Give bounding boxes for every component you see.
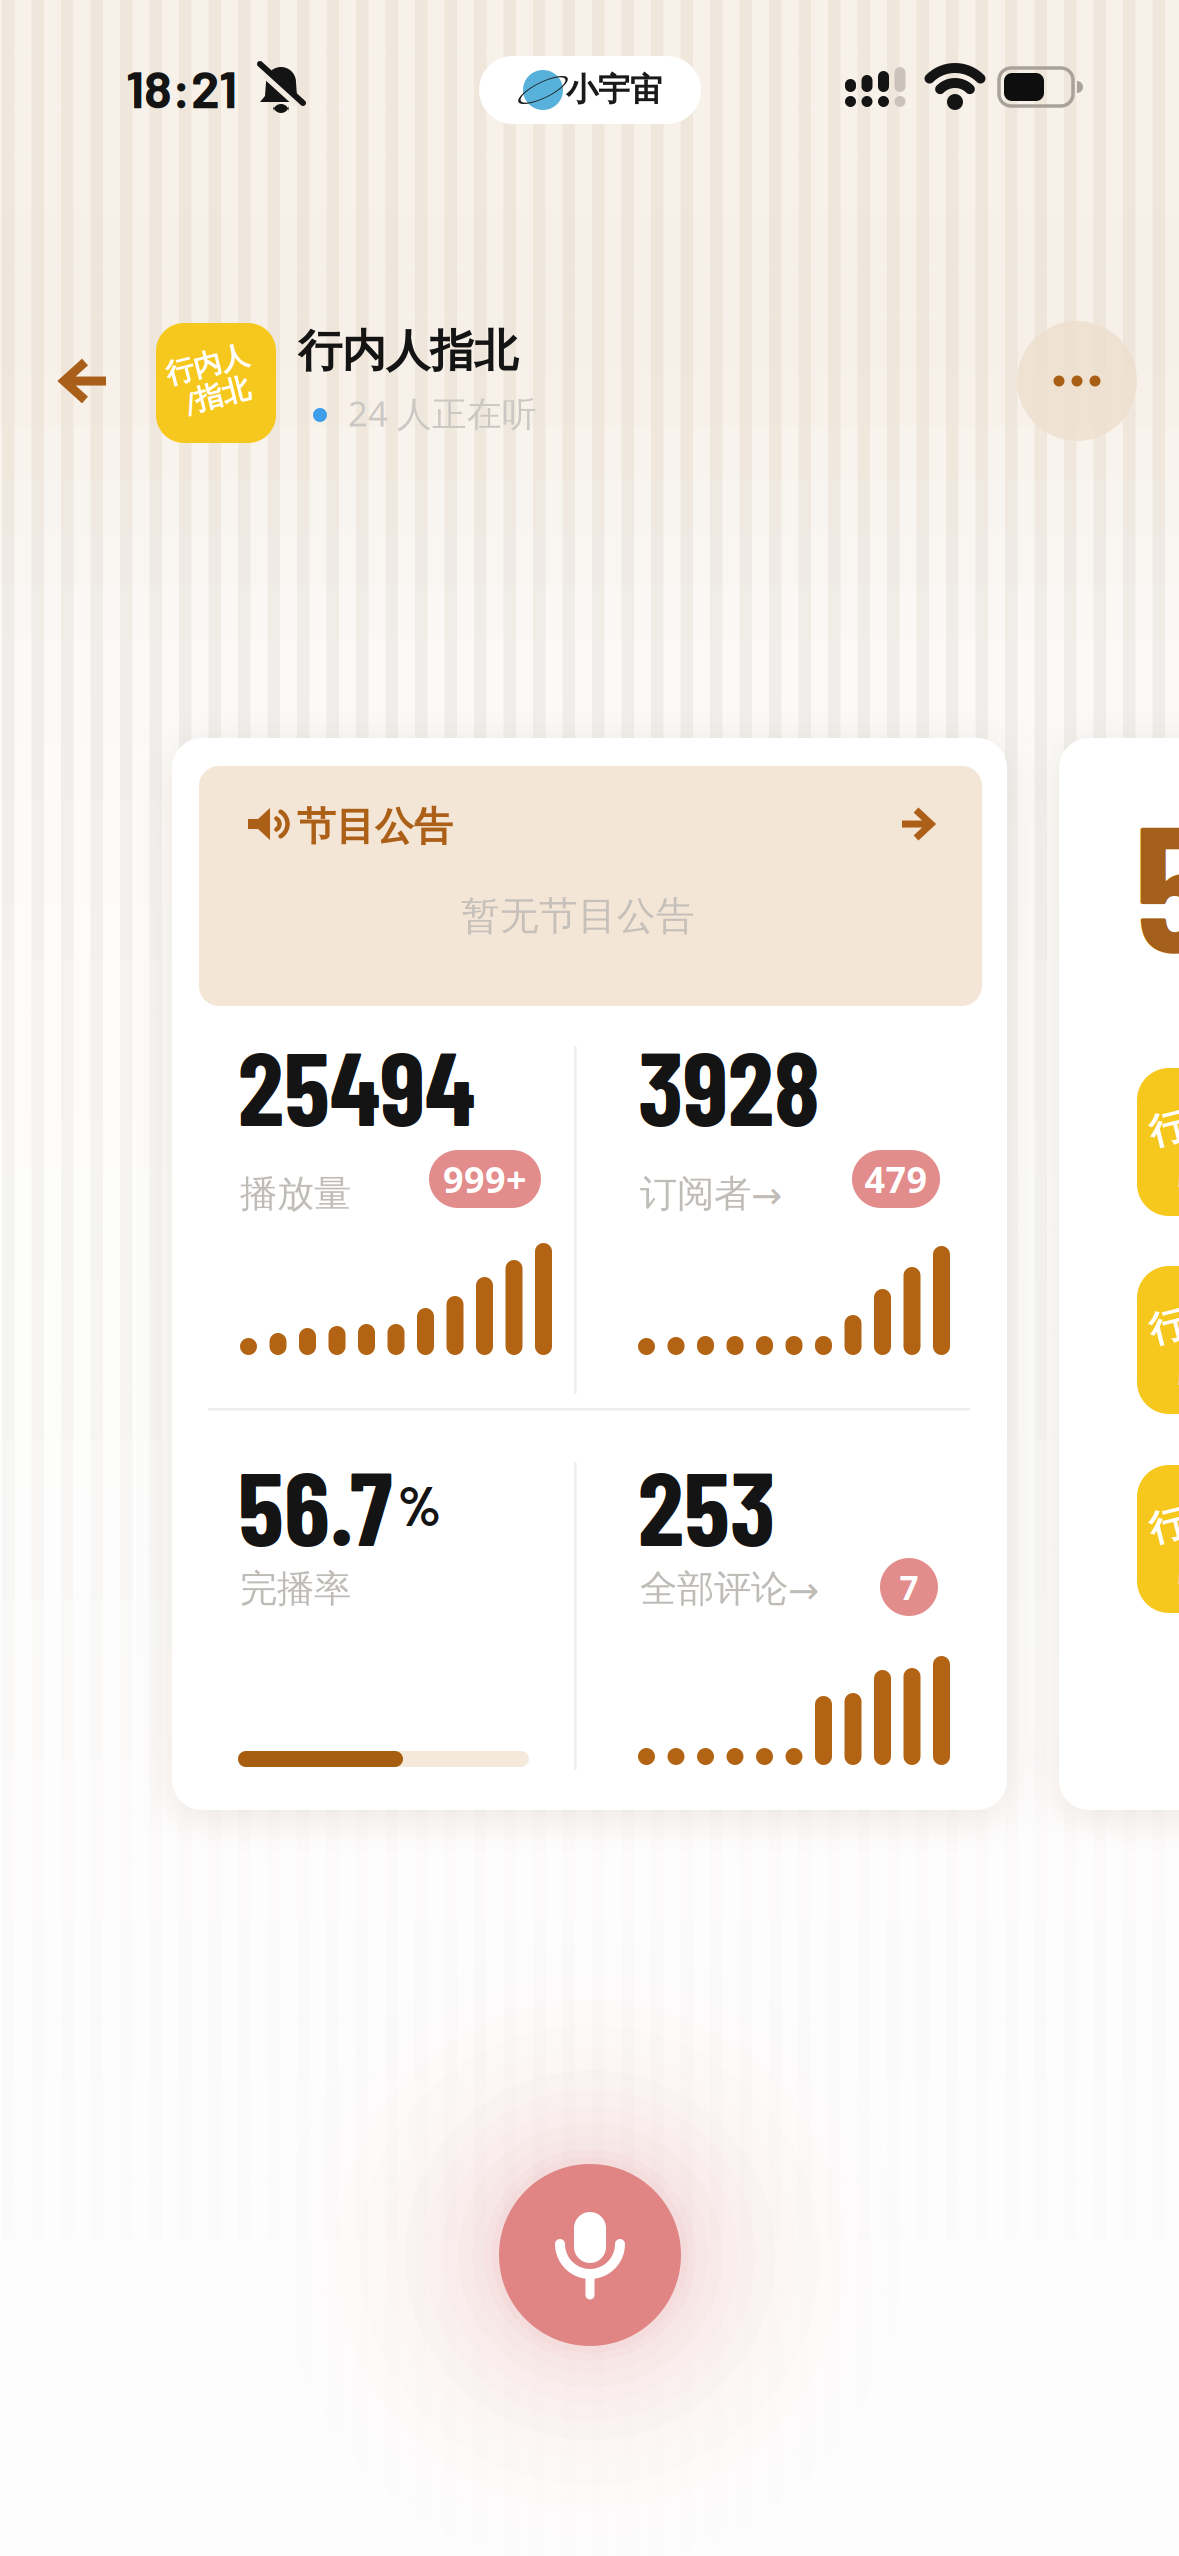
staticText: 7 (899, 1565, 918, 1609)
staticText: ∕指北 (1168, 1536, 1179, 1580)
staticText: 999+ (443, 1155, 527, 1203)
staticText: 订阅者→ (640, 1171, 782, 1217)
staticText: 播放量 (240, 1171, 351, 1217)
button[interactable]: More (1017, 321, 1137, 441)
button[interactable]: 全部评论→ (640, 1566, 819, 1612)
staticText: 行内人 (169, 347, 253, 381)
staticText: 25494 (238, 1022, 475, 1147)
staticText: 行内人 (1153, 1098, 1179, 1142)
staticText: ∕指北 (1168, 1337, 1179, 1381)
staticText: 3928 (638, 1022, 820, 1147)
button[interactable]: Record (499, 2164, 681, 2346)
staticText: 节目公告 (297, 803, 453, 850)
staticText: 完播率 (240, 1566, 351, 1612)
staticText: 行内人指北 (298, 324, 518, 378)
staticText: 小宇宙 (566, 70, 662, 109)
staticText: 行内人 (1153, 1495, 1179, 1539)
staticText: 479 (864, 1155, 927, 1203)
staticText: 行内人 (1153, 1296, 1179, 1340)
staticText: 56.7 (238, 1442, 392, 1567)
staticText: 18:21 (126, 57, 237, 119)
button[interactable]: 节目公告 (199, 766, 982, 1006)
staticText: ∕指北 (1168, 1139, 1179, 1183)
button[interactable]: Weekly summary (1059, 738, 1179, 1810)
staticText: 暂无节目公告 (461, 892, 695, 940)
staticText: 24 人正在听 (348, 390, 537, 436)
staticText: 全部评论→ (640, 1566, 819, 1612)
staticText: 5 (1135, 774, 1179, 988)
staticText: 253 (638, 1442, 775, 1567)
button[interactable]: Back (33, 341, 113, 421)
button[interactable]: 订阅者→ (640, 1171, 782, 1217)
staticText: % (398, 1470, 441, 1537)
staticText: ∕指北 (181, 379, 247, 414)
